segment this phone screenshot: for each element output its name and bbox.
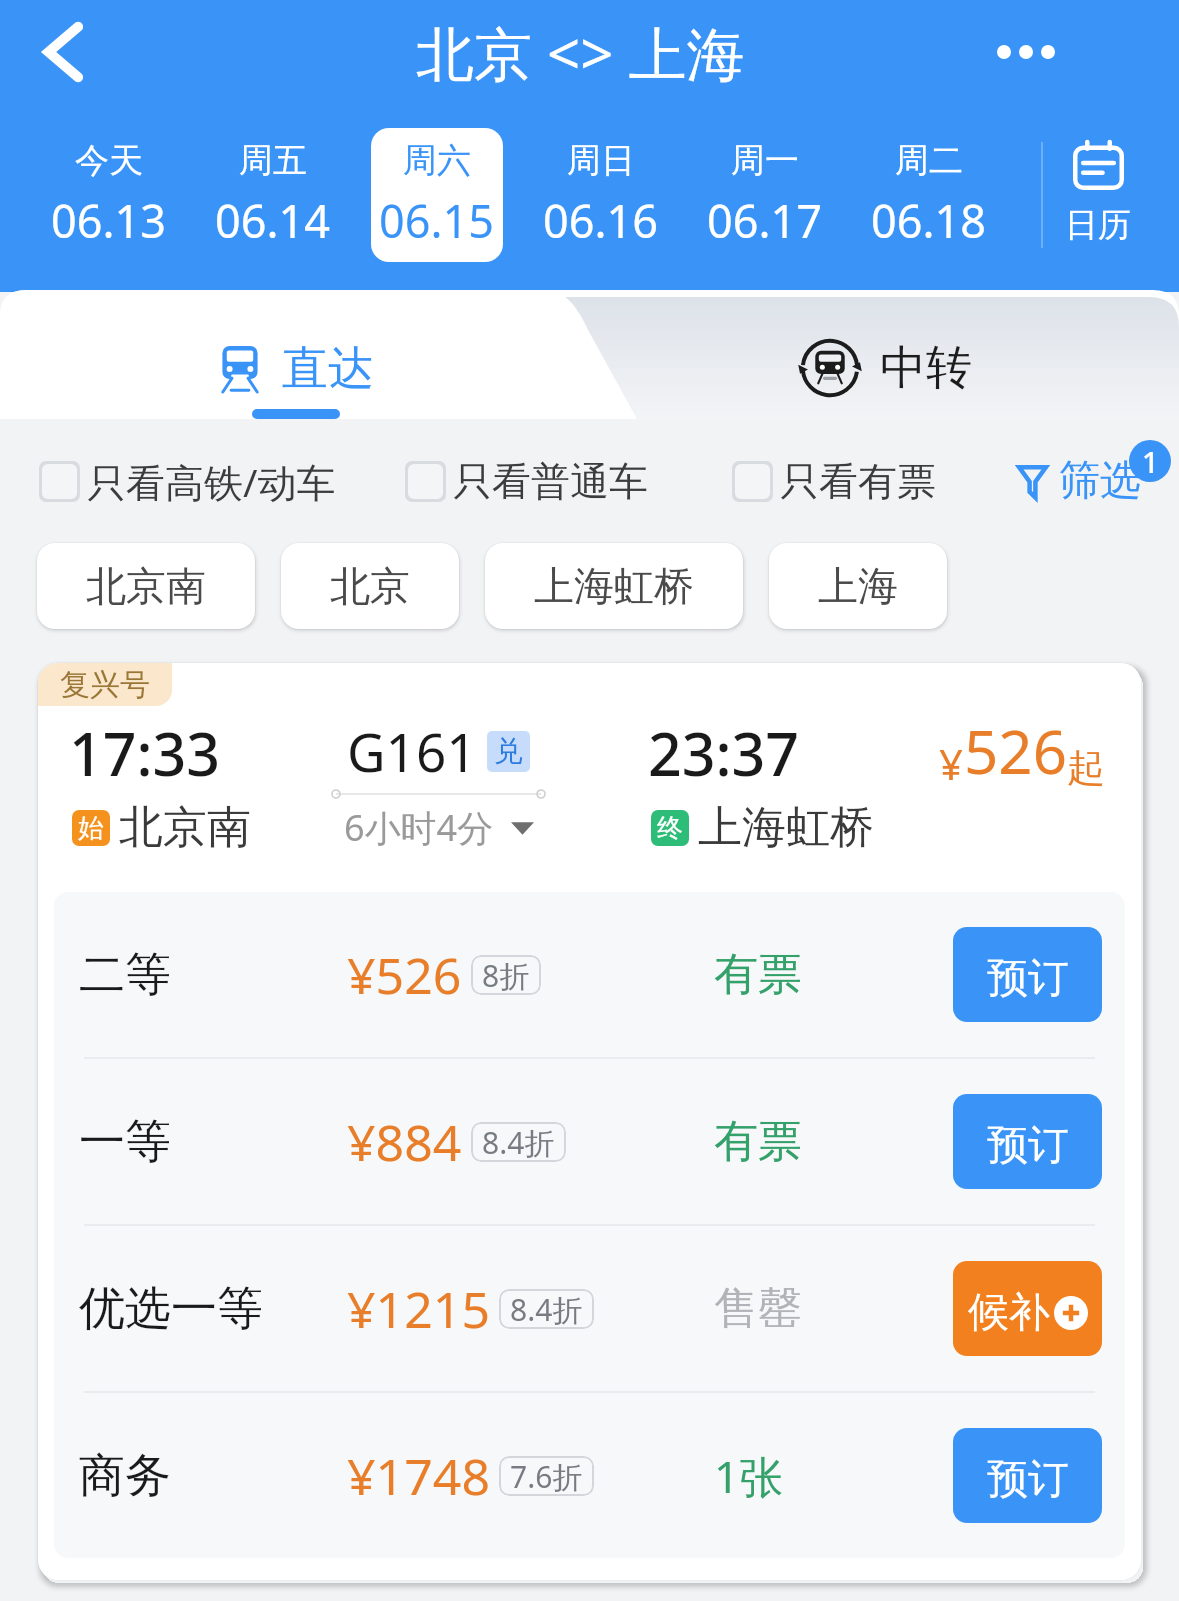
staticText: 今天 — [75, 139, 143, 182]
staticText: 起 — [1067, 744, 1105, 792]
staticText: 预订 — [987, 953, 1069, 1005]
button[interactable]: 今天 — [43, 128, 175, 262]
staticText: 周一 — [731, 139, 799, 182]
button[interactable]: 周五 — [207, 128, 339, 262]
staticText: 日历 — [1065, 204, 1131, 246]
staticText: G161 — [347, 715, 477, 787]
button[interactable]: 上海虹桥 — [485, 543, 743, 629]
staticText: 周五 — [239, 139, 307, 182]
staticText: 北京南 — [119, 800, 251, 855]
staticText: 有票 — [714, 947, 802, 1002]
button[interactable]: 只看普通车 — [405, 457, 648, 506]
button[interactable]: 复兴号 — [38, 663, 1141, 1580]
staticText: 06.17 — [707, 190, 823, 251]
staticText: 上海虹桥 — [698, 800, 874, 855]
staticText: 06.18 — [871, 190, 987, 251]
button[interactable]: 周一 — [699, 128, 831, 262]
staticText: 06.16 — [543, 190, 659, 251]
staticText: 北京 <> 上海 — [416, 13, 745, 92]
button[interactable]: 预订 — [953, 1094, 1102, 1189]
staticText: 北京南 — [86, 561, 206, 611]
staticText: 候补 — [968, 1287, 1050, 1339]
staticText: 预订 — [987, 1120, 1069, 1172]
staticText: 始 — [78, 812, 104, 845]
staticText: 23:37 — [648, 713, 800, 793]
staticText: 06.13 — [51, 190, 167, 251]
staticText: 直达 — [282, 340, 374, 398]
staticText: 8.4折 — [482, 1122, 555, 1162]
button[interactable]: 预订 — [953, 927, 1102, 1022]
staticText: 7.6折 — [510, 1456, 583, 1496]
staticText: 8.4折 — [510, 1289, 583, 1329]
staticText: 周日 — [567, 139, 635, 182]
staticText: 526 — [964, 710, 1067, 792]
staticText: 有票 — [714, 1114, 802, 1169]
button[interactable]: Calendar — [1043, 120, 1179, 270]
button[interactable]: 北京南 — [37, 543, 255, 629]
staticText: 一等 — [79, 1113, 171, 1171]
staticText: 上海 — [818, 561, 898, 611]
staticText: 1 — [1142, 442, 1159, 481]
staticText: 二等 — [79, 946, 171, 1004]
button[interactable]: 候补 — [953, 1261, 1102, 1356]
staticText: 06.14 — [215, 190, 331, 251]
staticText: 终 — [657, 812, 683, 845]
button[interactable]: 只看有票 — [732, 457, 936, 506]
staticText: ¥ — [939, 735, 964, 792]
staticText: 8折 — [482, 955, 530, 995]
button[interactable]: 直达 — [0, 290, 590, 419]
staticText: ¥884 — [347, 1108, 462, 1176]
button[interactable]: 周二 — [863, 128, 995, 262]
button[interactable]: 中转 — [590, 290, 1179, 419]
button[interactable]: 上海 — [769, 543, 947, 629]
staticText: 复兴号 — [60, 666, 150, 704]
staticText: 北京 — [330, 561, 410, 611]
button[interactable]: 预订 — [953, 1428, 1102, 1523]
button[interactable]: 北京 — [281, 543, 459, 629]
staticText: 只看高铁/动车 — [87, 455, 336, 508]
button[interactable]: 筛选 — [1018, 455, 1141, 507]
staticText: 筛选 — [1059, 455, 1141, 507]
staticText: 周二 — [895, 139, 963, 182]
staticText: 商务 — [79, 1447, 171, 1505]
staticText: ¥1215 — [347, 1275, 490, 1343]
staticText: 6小时4分 — [344, 803, 494, 852]
staticText: 预订 — [987, 1454, 1069, 1506]
staticText: 1张 — [714, 1446, 784, 1506]
staticText: 售罄 — [714, 1281, 802, 1336]
staticText: ¥1748 — [347, 1442, 490, 1510]
staticText: 兑 — [494, 733, 523, 770]
staticText: 06.15 — [379, 190, 495, 251]
staticText: 17:33 — [69, 713, 221, 793]
staticText: 只看普通车 — [453, 457, 648, 506]
button[interactable]: 只看高铁/动车 — [39, 455, 336, 508]
staticText: 中转 — [880, 339, 972, 397]
staticText: 只看有票 — [780, 457, 936, 506]
button[interactable]: 周日 — [535, 128, 667, 262]
staticText: 周六 — [403, 139, 471, 182]
staticText: ¥526 — [347, 941, 462, 1009]
staticText: 优选一等 — [79, 1280, 263, 1338]
button[interactable]: 周六 — [371, 128, 503, 262]
button[interactable]: Back — [8, 0, 118, 104]
button[interactable]: More options — [962, 6, 1090, 98]
staticText: 上海虹桥 — [534, 561, 694, 611]
